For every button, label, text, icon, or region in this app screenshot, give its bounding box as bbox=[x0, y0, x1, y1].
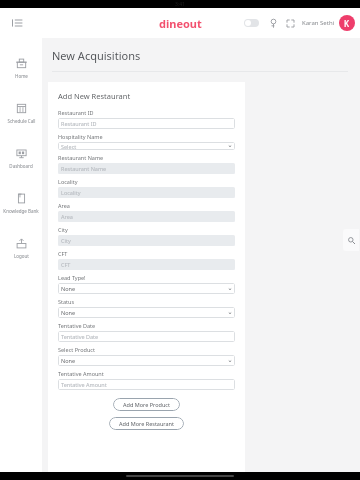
button[interactable]: None bbox=[58, 307, 235, 318]
staticText: City bbox=[58, 226, 68, 233]
button[interactable]: Fullscreen bbox=[283, 16, 298, 31]
staticText: Tentative Amount bbox=[58, 370, 104, 377]
button[interactable]: Add More Product bbox=[113, 398, 180, 411]
button[interactable]: Add More Restaurant bbox=[109, 417, 184, 430]
staticText: Select Product bbox=[58, 346, 95, 353]
button[interactable]: Logout bbox=[0, 234, 42, 261]
button[interactable]: Menu bbox=[8, 14, 26, 32]
staticText: Locality bbox=[61, 189, 81, 196]
staticText: Knowledge Bank bbox=[3, 208, 39, 214]
staticText: Status bbox=[58, 298, 75, 305]
button[interactable]: None bbox=[58, 355, 235, 366]
button[interactable]: CFT bbox=[58, 259, 235, 270]
staticText: Dashboard bbox=[9, 163, 33, 169]
button[interactable]: Restaurant ID bbox=[58, 118, 235, 129]
button[interactable]: Area bbox=[58, 211, 235, 222]
staticText: Restaurant ID bbox=[58, 109, 94, 116]
staticText: CFT bbox=[61, 261, 71, 268]
staticText: Hospitality Name bbox=[58, 133, 103, 140]
button[interactable]: Locality bbox=[58, 187, 235, 198]
staticText: None bbox=[61, 357, 76, 364]
button[interactable]: City bbox=[58, 235, 235, 246]
staticText: Area bbox=[58, 202, 70, 209]
staticText: None bbox=[61, 285, 76, 292]
button[interactable]: None bbox=[58, 283, 235, 294]
staticText: Restaurant Name bbox=[58, 154, 104, 161]
button[interactable]: Dashboard bbox=[0, 144, 42, 171]
staticText: CFT bbox=[58, 250, 68, 257]
staticText: Tentative Date bbox=[61, 333, 99, 340]
staticText: New Acquisitions bbox=[52, 48, 141, 63]
button[interactable]: Help bbox=[343, 229, 359, 251]
staticText: 3:41 bbox=[175, 1, 185, 8]
button[interactable]: Home bbox=[0, 54, 42, 81]
staticText: City bbox=[61, 237, 71, 244]
staticText: Home bbox=[15, 73, 28, 79]
staticText: Locality bbox=[58, 178, 78, 185]
button[interactable]: Karan Sethi bbox=[302, 15, 355, 31]
button[interactable]: Tentative Date bbox=[58, 331, 235, 342]
staticText: Select bbox=[61, 143, 77, 150]
button[interactable]: Schedule Call bbox=[0, 99, 42, 126]
staticText: Tentative Amount bbox=[61, 381, 107, 388]
staticText: Schedule Call bbox=[7, 118, 36, 124]
button[interactable]: Knowledge Bank bbox=[0, 189, 42, 216]
staticText: dineout bbox=[159, 16, 202, 31]
staticText: Add More Product bbox=[123, 401, 170, 408]
staticText: Tentative Date bbox=[58, 322, 96, 329]
staticText: Lead Type! bbox=[58, 274, 86, 281]
staticText: Logout bbox=[14, 253, 29, 259]
button[interactable]: Select bbox=[58, 142, 235, 150]
button[interactable]: Support bbox=[266, 16, 281, 31]
staticText: Add New Restaurant bbox=[58, 91, 131, 101]
staticText: Karan Sethi bbox=[302, 19, 335, 27]
staticText: Area bbox=[61, 213, 73, 220]
button[interactable]: Toggle bbox=[241, 16, 262, 30]
button[interactable]: Restaurant Name bbox=[58, 163, 235, 174]
staticText: Restaurant Name bbox=[61, 165, 107, 172]
staticText: Add More Restaurant bbox=[119, 420, 174, 427]
staticText: K bbox=[344, 18, 350, 29]
staticText: Restaurant ID bbox=[61, 120, 97, 127]
staticText: None bbox=[61, 309, 76, 316]
button[interactable]: Tentative Amount bbox=[58, 379, 235, 390]
